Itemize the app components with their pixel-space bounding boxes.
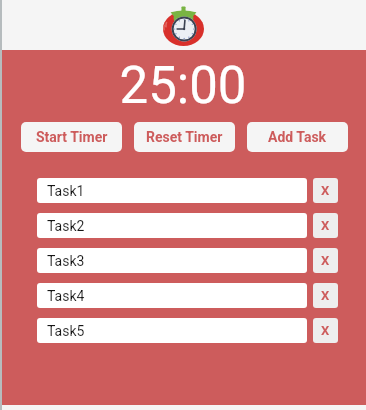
- staticText: X: [321, 253, 330, 268]
- staticText: Task2: [47, 218, 85, 234]
- staticText: Add Task: [268, 129, 327, 145]
- button[interactable]: Start Timer: [21, 122, 122, 152]
- staticText: X: [321, 288, 330, 303]
- button[interactable]: Task2: [37, 213, 307, 238]
- staticText: X: [321, 218, 330, 233]
- button[interactable]: Delete task: [313, 318, 338, 343]
- button[interactable]: Add Task: [247, 122, 348, 152]
- button[interactable]: Delete task: [313, 213, 338, 238]
- button[interactable]: Reset Timer: [134, 122, 235, 152]
- staticText: X: [321, 323, 330, 338]
- button[interactable]: Task3: [37, 248, 307, 273]
- button[interactable]: Delete task: [313, 248, 338, 273]
- staticText: Task5: [47, 323, 85, 339]
- staticText: Start Timer: [36, 129, 108, 145]
- staticText: Task1: [47, 183, 85, 199]
- button[interactable]: Task1: [37, 178, 307, 203]
- staticText: X: [321, 183, 330, 198]
- button[interactable]: Delete task: [313, 283, 338, 308]
- button[interactable]: Task5: [37, 318, 307, 343]
- staticText: Task3: [47, 253, 85, 269]
- staticText: 25:00: [119, 56, 247, 116]
- staticText: Task4: [47, 288, 85, 304]
- button[interactable]: Delete task: [313, 178, 338, 203]
- staticText: Reset Timer: [146, 129, 223, 145]
- button[interactable]: Task4: [37, 283, 307, 308]
